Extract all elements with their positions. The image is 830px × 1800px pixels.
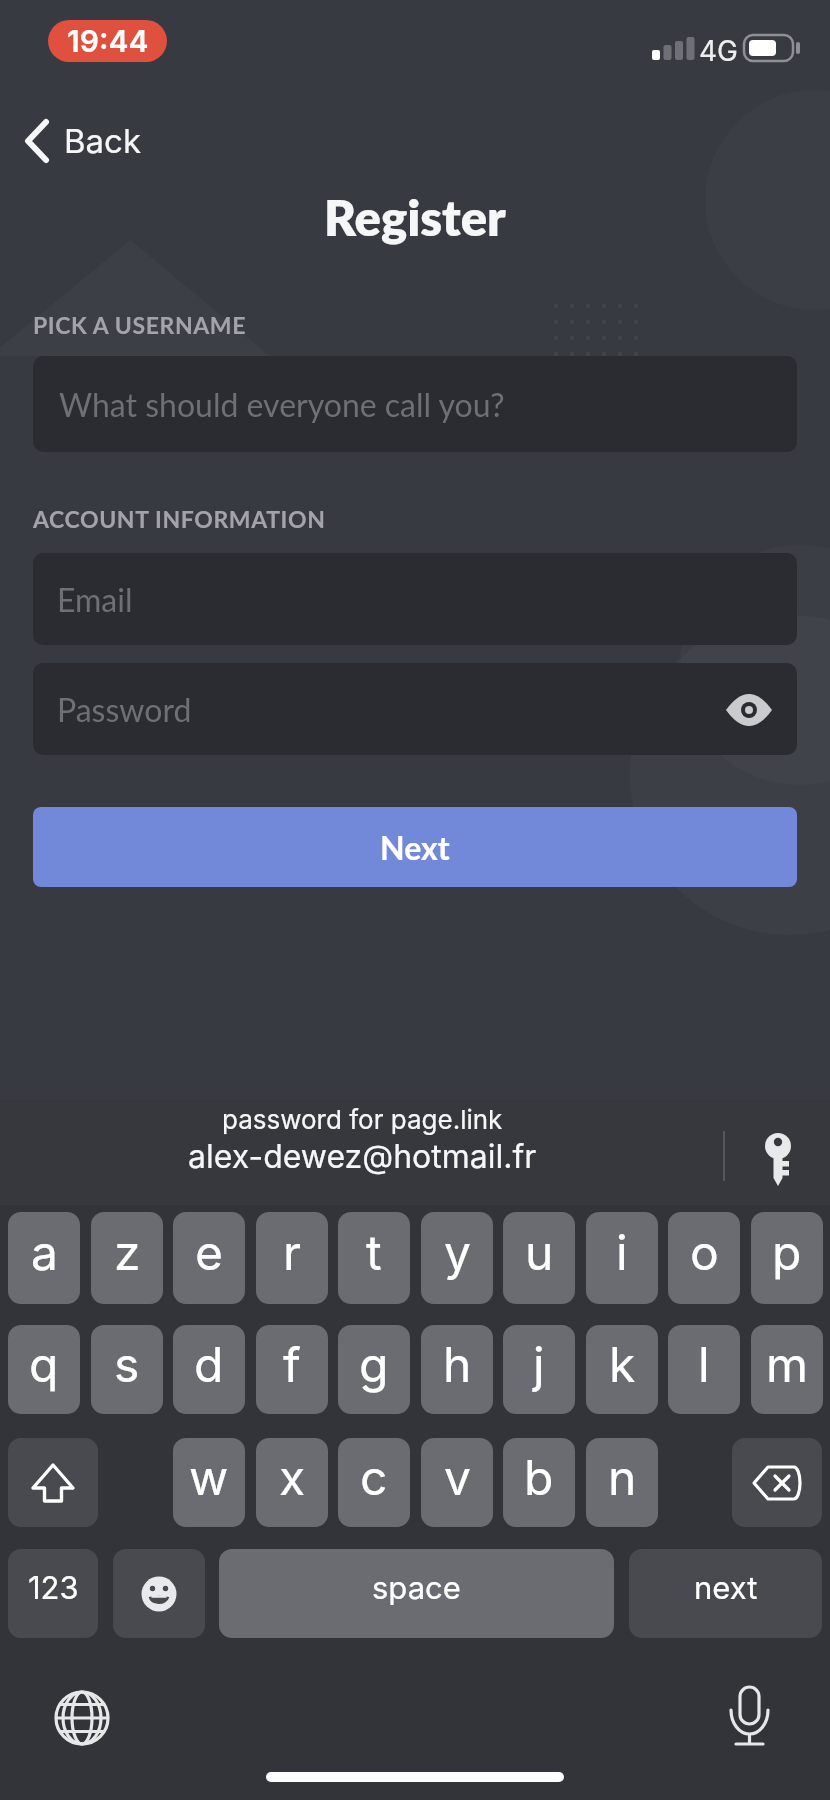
button[interactable]: j: [503, 1325, 575, 1414]
button[interactable]: y: [421, 1212, 493, 1304]
staticText: j: [533, 1335, 545, 1393]
staticText: w: [189, 1448, 229, 1506]
staticText: r: [283, 1223, 302, 1281]
button[interactable]: next: [629, 1549, 822, 1638]
button[interactable]: Email: [33, 553, 797, 645]
staticText: Next: [380, 828, 450, 866]
staticText: password for page.link: [222, 1104, 503, 1135]
button[interactable]: v: [421, 1438, 493, 1527]
button[interactable]: a: [8, 1212, 80, 1304]
staticText: m: [766, 1335, 809, 1393]
button[interactable]: space: [219, 1549, 614, 1638]
staticText: q: [29, 1335, 59, 1393]
button[interactable]: d: [173, 1325, 245, 1414]
button[interactable]: k: [586, 1325, 658, 1414]
staticText: 19:44: [67, 23, 149, 59]
button[interactable]: Password: [33, 663, 797, 755]
staticText: 123: [28, 1569, 79, 1607]
staticText: v: [444, 1448, 471, 1506]
staticText: k: [609, 1335, 636, 1393]
button[interactable]: [717, 682, 781, 738]
staticText: alex-dewez@hotmail.fr: [188, 1137, 537, 1176]
button[interactable]: t: [338, 1212, 410, 1304]
staticText: i: [616, 1223, 628, 1281]
button[interactable]: u: [503, 1212, 575, 1304]
staticText: 4G: [699, 34, 738, 64]
button[interactable]: [113, 1549, 205, 1638]
button[interactable]: [742, 1110, 814, 1196]
staticText: x: [279, 1448, 306, 1506]
staticText: next: [694, 1569, 758, 1607]
button[interactable]: n: [586, 1438, 658, 1527]
staticText: b: [524, 1448, 554, 1506]
staticText: g: [359, 1335, 389, 1393]
staticText: Password: [57, 690, 192, 728]
staticText: u: [525, 1223, 554, 1281]
staticText: h: [443, 1335, 472, 1393]
staticText: a: [31, 1223, 58, 1281]
button[interactable]: c: [338, 1438, 410, 1527]
button[interactable]: [8, 1438, 98, 1527]
staticText: d: [194, 1335, 224, 1393]
button[interactable]: i: [586, 1212, 658, 1304]
button[interactable]: 123: [8, 1549, 98, 1638]
button[interactable]: s: [91, 1325, 163, 1414]
button[interactable]: [712, 1678, 786, 1752]
staticText: PICK A USERNAME: [33, 311, 247, 339]
button[interactable]: Back: [20, 115, 180, 167]
button[interactable]: g: [338, 1325, 410, 1414]
button[interactable]: b: [503, 1438, 575, 1527]
staticText: t: [366, 1223, 382, 1281]
button[interactable]: [46, 1682, 118, 1754]
staticText: n: [608, 1448, 637, 1506]
staticText: s: [114, 1335, 140, 1393]
staticText: l: [698, 1335, 710, 1393]
button[interactable]: z: [91, 1212, 163, 1304]
button[interactable]: What should everyone call you?: [33, 356, 797, 452]
staticText: y: [444, 1223, 471, 1281]
button[interactable]: e: [173, 1212, 245, 1304]
staticText: ACCOUNT INFORMATION: [33, 505, 326, 533]
button[interactable]: m: [751, 1325, 823, 1414]
staticText: e: [195, 1223, 223, 1281]
staticText: f: [283, 1335, 301, 1393]
staticText: c: [360, 1448, 388, 1506]
button[interactable]: x: [256, 1438, 328, 1527]
button[interactable]: [732, 1438, 822, 1527]
staticText: o: [690, 1223, 719, 1281]
staticText: z: [114, 1223, 141, 1281]
staticText: Back: [64, 121, 142, 161]
button[interactable]: f: [256, 1325, 328, 1414]
button[interactable]: l: [668, 1325, 740, 1414]
button[interactable]: Next: [33, 807, 797, 887]
staticText: Email: [57, 580, 133, 618]
button[interactable]: h: [421, 1325, 493, 1414]
staticText: space: [372, 1569, 461, 1607]
staticText: p: [772, 1223, 802, 1281]
button[interactable]: [140, 1098, 584, 1190]
staticText: Register: [324, 188, 506, 247]
staticText: What should everyone call you?: [59, 385, 505, 423]
button[interactable]: p: [751, 1212, 823, 1304]
button[interactable]: o: [668, 1212, 740, 1304]
button[interactable]: r: [256, 1212, 328, 1304]
button[interactable]: q: [8, 1325, 80, 1414]
button[interactable]: w: [173, 1438, 245, 1527]
